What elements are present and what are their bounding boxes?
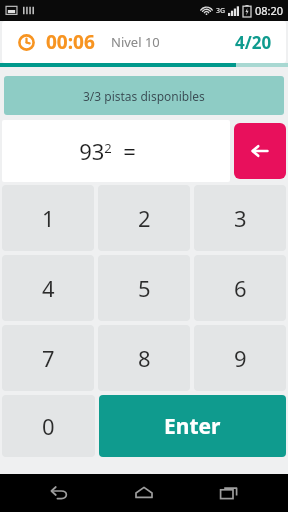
staticText: 3/3 pistas disponibles [83,88,205,104]
button[interactable]: 3/3 pistas disponibles [4,76,284,115]
staticText: 1 [42,203,55,233]
button[interactable]: Enter [99,395,286,457]
staticText: 6 [234,273,247,303]
button[interactable]: 2 [98,185,190,251]
staticText: 4/20 [235,31,272,54]
staticText: 4 [42,273,55,303]
button[interactable]: 3 [194,185,286,251]
button[interactable]: Backspace [234,123,286,179]
button[interactable]: 0 [2,395,95,457]
staticText: 5 [138,273,151,303]
staticText: Nivel 10 [111,33,160,51]
button[interactable]: 8 [98,325,190,391]
staticText: 3G [216,6,226,16]
staticText: 9 [234,343,247,373]
button[interactable]: Back [33,474,85,512]
staticText: 0 [42,411,55,441]
button[interactable]: 7 [2,325,94,391]
staticText: Enter [164,412,221,441]
staticText: 2 [138,203,151,233]
staticText: 00:06 [46,29,95,55]
button[interactable]: 5 [98,255,190,321]
button[interactable]: 9 [194,325,286,391]
staticText: 3 [234,203,247,233]
button[interactable]: Recents [203,474,255,512]
button[interactable]: 4 [2,255,94,321]
staticText: 08:20 [255,3,284,18]
button[interactable]: 6 [194,255,286,321]
staticText: 7 [42,343,55,373]
staticText: 8 [138,343,151,373]
button[interactable]: Home [118,474,170,512]
button[interactable]: 1 [2,185,94,251]
staticText: 932 = [79,136,136,166]
